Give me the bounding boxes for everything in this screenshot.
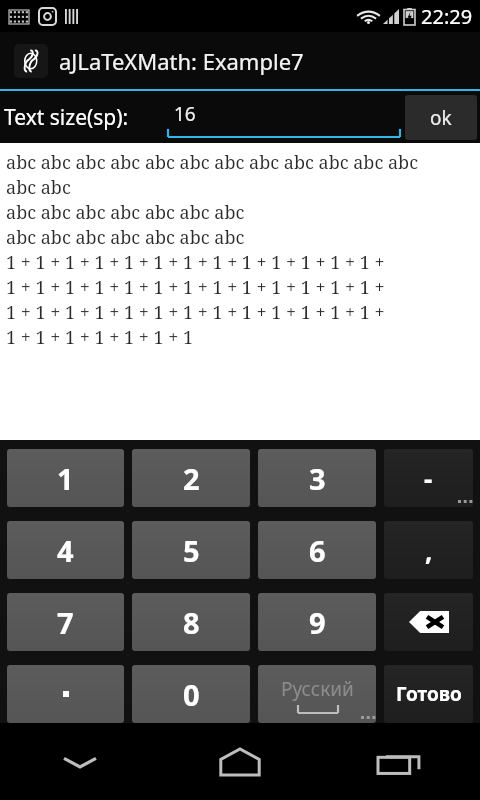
button[interactable]: ok (405, 95, 477, 140)
staticText: 3 (309, 459, 326, 498)
button[interactable]: 3 (258, 449, 376, 507)
staticText: , (425, 533, 433, 568)
button[interactable]: 6 (258, 521, 376, 579)
staticText: 8 (183, 603, 200, 642)
button[interactable]: 5 (132, 521, 250, 579)
staticText: 2 (183, 459, 200, 498)
staticText: 6 (309, 531, 326, 570)
staticText: 1 (57, 459, 74, 498)
staticText: aJLaTeXMath: Example7 (59, 46, 304, 76)
button[interactable]: 1 (7, 449, 124, 507)
staticText: - (424, 461, 433, 496)
button[interactable]: , (384, 521, 473, 579)
staticText: 16 (174, 101, 196, 127)
staticText: abc abc abc abc abc abc abc abc abc abc … (6, 150, 418, 175)
staticText: abc abc abc abc abc abc abc (6, 225, 245, 250)
button[interactable]: 9 (258, 593, 376, 651)
staticText: Русский (281, 676, 354, 702)
button[interactable]: Hide keyboard (0, 723, 160, 800)
staticText: Готово (396, 681, 462, 707)
button[interactable]: 0 (132, 665, 250, 723)
button[interactable]: 8 (132, 593, 250, 651)
button[interactable]: Home (160, 723, 320, 800)
button[interactable]: 2 (132, 449, 250, 507)
staticText: 1 + 1 + 1 + 1 + 1 + 1 + 1 (6, 325, 193, 350)
staticText: 7 (57, 603, 74, 642)
staticText: 1 + 1 + 1 + 1 + 1 + 1 + 1 + 1 + 1 + 1 + … (6, 300, 385, 325)
button[interactable]: 4 (7, 521, 124, 579)
staticText: Text size(sp): (4, 103, 129, 132)
button[interactable]: Русский (258, 665, 376, 723)
button[interactable]: 16 (168, 101, 400, 137)
button[interactable]: Recent apps (320, 723, 480, 800)
button[interactable]: 7 (7, 593, 124, 651)
staticText: abc abc (6, 175, 71, 200)
button[interactable]: Period (7, 665, 124, 723)
staticText: 0 (183, 675, 200, 714)
button[interactable]: Backspace (384, 593, 473, 651)
staticText: 9 (309, 603, 326, 642)
button[interactable]: Готово (384, 665, 473, 723)
staticText: 22:29 (421, 3, 473, 30)
staticText: abc abc abc abc abc abc abc (6, 200, 245, 225)
staticText: ok (430, 105, 452, 131)
staticText: 5 (183, 531, 200, 570)
staticText: 1 + 1 + 1 + 1 + 1 + 1 + 1 + 1 + 1 + 1 + … (6, 250, 385, 275)
button[interactable]: - (384, 449, 473, 507)
staticText: 1 + 1 + 1 + 1 + 1 + 1 + 1 + 1 + 1 + 1 + … (6, 275, 385, 300)
staticText: 4 (57, 531, 74, 570)
